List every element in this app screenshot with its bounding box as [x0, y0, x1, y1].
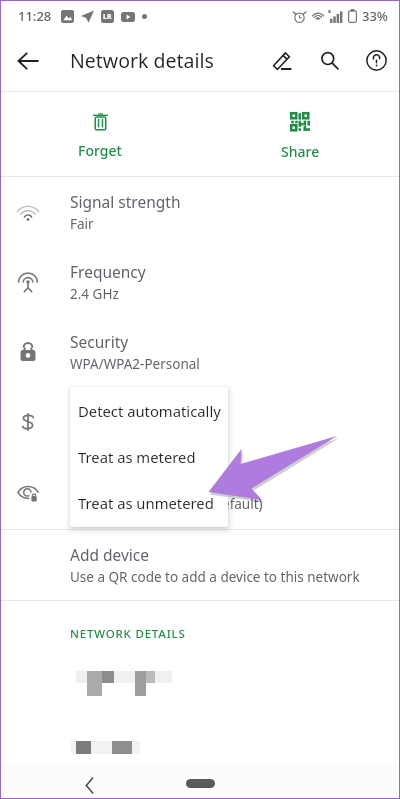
button[interactable]: Back: [78, 774, 100, 796]
button[interactable]: Privacy: [0, 457, 400, 527]
staticText: Use a QR code to add a device to this ne…: [70, 568, 360, 586]
button[interactable]: Treat as metered: [70, 434, 228, 480]
staticText: Fair: [70, 215, 94, 233]
button[interactable]: Search: [306, 37, 353, 84]
staticText: Security: [70, 331, 129, 352]
button[interactable]: Signal strength: [0, 177, 400, 247]
staticText: Share: [281, 142, 320, 161]
button[interactable]: Home: [186, 779, 215, 788]
staticText: Treat as unmetered: [78, 493, 214, 513]
button[interactable]: Frequency: [0, 247, 400, 317]
button[interactable]: Detect automatically: [70, 388, 228, 434]
staticText: Add device: [70, 544, 150, 565]
button[interactable]: Forget: [0, 92, 200, 176]
staticText: Network usage: [70, 401, 181, 422]
staticText: 33%: [362, 7, 388, 25]
button[interactable]: Share: [200, 92, 400, 176]
button[interactable]: Help: [353, 37, 400, 84]
staticText: Use randomized MAC (default): [70, 495, 263, 513]
staticText: WPA/WPA2-Personal: [70, 355, 200, 373]
button[interactable]: Network usage: [0, 387, 400, 457]
staticText: Signal strength: [70, 191, 181, 212]
staticText: Network details: [70, 47, 214, 74]
button[interactable]: Edit: [259, 37, 306, 84]
staticText: Forget: [78, 141, 122, 160]
staticText: NETWORK DETAILS: [70, 626, 186, 642]
staticText: LR: [103, 12, 112, 22]
button[interactable]: Navigate up: [4, 37, 52, 85]
button[interactable]: Security: [0, 317, 400, 387]
staticText: 11:28: [18, 7, 52, 25]
staticText: Frequency: [70, 261, 146, 282]
button[interactable]: Treat as unmetered: [70, 480, 228, 526]
staticText: Detect automatically: [78, 401, 221, 421]
button[interactable]: Add device: [0, 530, 400, 600]
staticText: Treat as metered: [78, 447, 196, 467]
staticText: 2.4 GHz: [70, 285, 119, 303]
